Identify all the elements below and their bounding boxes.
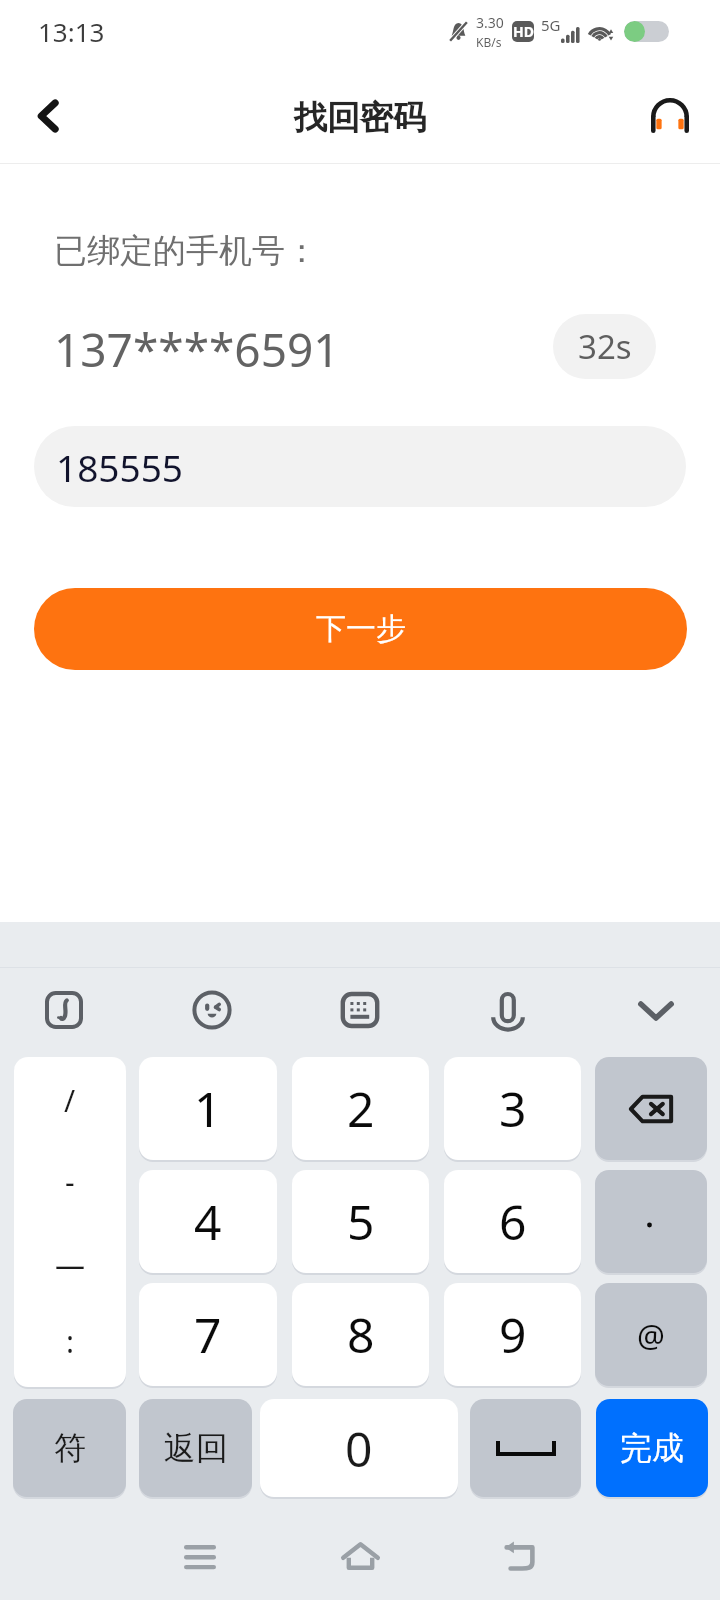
staticText: 下一步 xyxy=(316,610,406,648)
button[interactable]: 完成 xyxy=(596,1399,708,1497)
button[interactable]: 8 xyxy=(292,1283,429,1386)
staticText: 完成 xyxy=(620,1428,684,1468)
button[interactable]: mic xyxy=(479,981,537,1039)
button[interactable]: 0 xyxy=(260,1399,458,1497)
button[interactable]: 返回 xyxy=(139,1399,252,1497)
button[interactable] xyxy=(595,1170,707,1273)
staticText: 已绑定的手机号： xyxy=(54,230,318,272)
button[interactable]: keyboard xyxy=(331,981,389,1039)
button[interactable]: 2 xyxy=(292,1057,429,1160)
staticText: 返回 xyxy=(164,1428,228,1468)
staticText: 6 xyxy=(499,1189,527,1254)
staticText: 137****6591 xyxy=(54,318,340,381)
button[interactable]: / xyxy=(14,1057,126,1387)
button[interactable]: Customer service xyxy=(641,86,699,144)
staticText: - xyxy=(65,1161,75,1201)
button[interactable]: 9 xyxy=(444,1283,581,1386)
button[interactable]: @ xyxy=(595,1283,707,1386)
staticText: 1 xyxy=(194,1076,222,1141)
button[interactable]: Back xyxy=(480,1515,560,1595)
staticText: @ xyxy=(637,1314,665,1356)
button[interactable]: 7 xyxy=(139,1283,277,1386)
staticText: 32s xyxy=(578,324,632,369)
staticText: 8 xyxy=(347,1302,375,1367)
button[interactable]: Back xyxy=(19,87,77,145)
staticText: 符 xyxy=(54,1428,86,1468)
button[interactable] xyxy=(595,1057,707,1160)
button[interactable]: 6 xyxy=(444,1170,581,1273)
staticText: 3.30 xyxy=(476,13,504,32)
staticText: 185555 xyxy=(56,442,183,492)
staticText: / xyxy=(64,1080,76,1120)
staticText: : xyxy=(66,1321,75,1361)
staticText: 3 xyxy=(499,1076,527,1141)
staticText: KB/s xyxy=(476,34,502,50)
button[interactable]: chevron xyxy=(627,981,685,1039)
button[interactable]: Home xyxy=(320,1515,400,1595)
button[interactable]: emoji xyxy=(183,981,241,1039)
button[interactable]: 5 xyxy=(292,1170,429,1273)
button[interactable] xyxy=(470,1399,581,1497)
button[interactable]: 32s xyxy=(553,314,656,379)
button[interactable]: 3 xyxy=(444,1057,581,1160)
button[interactable]: 185555 xyxy=(34,426,686,507)
staticText: 5G xyxy=(541,15,561,35)
staticText: 7 xyxy=(194,1302,222,1367)
staticText: — xyxy=(55,1244,85,1284)
staticText: 13:13 xyxy=(38,14,105,49)
staticText: 9 xyxy=(499,1302,527,1367)
button[interactable]: handwrite xyxy=(35,981,93,1039)
button[interactable]: 符 xyxy=(13,1399,126,1497)
staticText: 2 xyxy=(347,1076,375,1141)
staticText: 0 xyxy=(345,1416,373,1481)
button[interactable]: Recents xyxy=(160,1515,240,1595)
button[interactable]: 1 xyxy=(139,1057,277,1160)
staticText: 5 xyxy=(347,1189,375,1254)
staticText: 4 xyxy=(194,1189,222,1254)
button[interactable]: 4 xyxy=(139,1170,277,1273)
staticText: 找回密码 xyxy=(294,97,426,139)
button[interactable]: 下一步 xyxy=(34,588,687,670)
staticText: HD xyxy=(513,22,534,41)
